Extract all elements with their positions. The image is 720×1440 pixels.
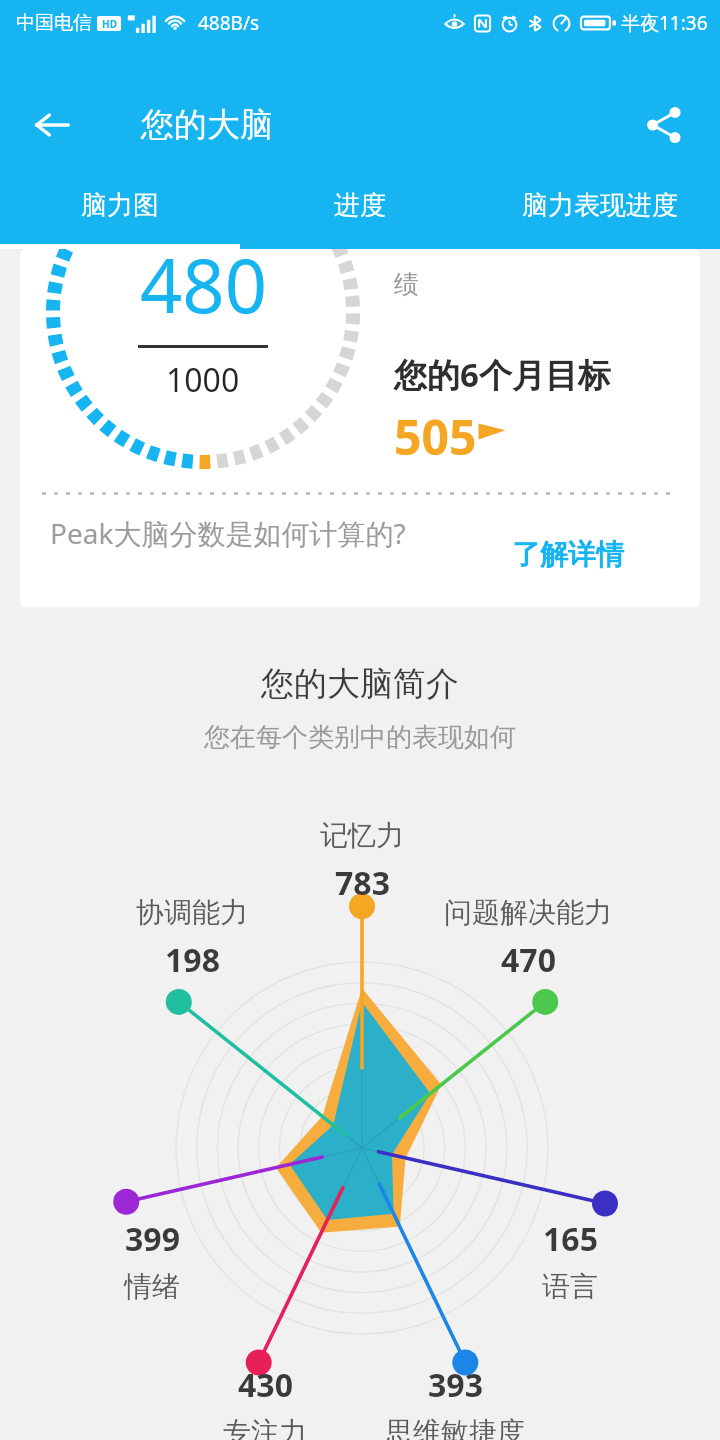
button[interactable]: 480 xyxy=(20,249,700,607)
staticText: 了解详情 xyxy=(512,537,624,572)
staticText: 1000 xyxy=(166,358,240,402)
staticText: 情绪 xyxy=(124,1269,180,1304)
button[interactable]: 脑力表现进度 xyxy=(480,162,720,249)
staticText: 您的大脑 xyxy=(141,104,273,146)
staticText: HD xyxy=(102,17,117,31)
staticText: 脑力图 xyxy=(81,189,159,222)
button[interactable]: 了解详情 xyxy=(512,537,624,572)
staticText: 绩 xyxy=(394,269,419,300)
staticText: 488B/s xyxy=(198,10,260,36)
staticText: 记忆力 xyxy=(320,818,404,853)
staticText: 480 xyxy=(140,249,267,335)
staticText: 进度 xyxy=(334,189,386,222)
staticText: 专注力 xyxy=(223,1415,307,1440)
staticText: 语言 xyxy=(542,1269,598,1304)
staticText: 783 xyxy=(335,861,390,905)
staticText: 中国电信 xyxy=(16,11,92,35)
staticText: 脑力表现进度 xyxy=(522,189,678,222)
staticText: 您的6个月目标 xyxy=(394,352,611,397)
staticText: 470 xyxy=(501,938,556,982)
staticText: 393 xyxy=(428,1363,483,1407)
staticText: 您在每个类别中的表现如何 xyxy=(204,721,516,754)
staticText: 协调能力 xyxy=(136,895,248,930)
staticText: 198 xyxy=(165,938,220,982)
staticText: 430 xyxy=(238,1363,293,1407)
button[interactable]: Back xyxy=(22,95,82,155)
staticText: 505 xyxy=(394,404,477,469)
staticText: 问题解决能力 xyxy=(444,895,612,930)
button[interactable]: Share xyxy=(634,95,694,155)
staticText: 思维敏捷度 xyxy=(385,1415,525,1440)
button[interactable]: 脑力图 xyxy=(0,162,240,249)
staticText: 165 xyxy=(543,1217,598,1261)
staticText: 半夜11:36 xyxy=(621,10,708,36)
button[interactable]: 进度 xyxy=(240,162,480,249)
staticText: 399 xyxy=(125,1217,180,1261)
staticText: Peak大脑分数是如何计算的? xyxy=(50,514,410,552)
staticText: 您的大脑简介 xyxy=(261,663,459,705)
